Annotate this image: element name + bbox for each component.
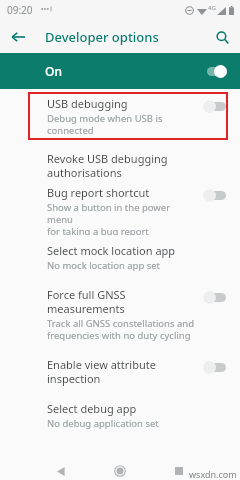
button[interactable]: Enable view attribute inspection xyxy=(0,349,240,393)
button[interactable]: Select debug app xyxy=(0,393,240,433)
staticText: Select debug app xyxy=(47,401,137,416)
button[interactable]: Recents xyxy=(170,462,188,480)
staticText: On xyxy=(45,63,62,79)
staticText: Bug report shortcut xyxy=(47,185,150,200)
button[interactable]: On xyxy=(0,53,240,89)
button[interactable]: Back xyxy=(6,25,30,49)
button[interactable]: USB debugging xyxy=(0,89,240,141)
staticText: Select mock location app xyxy=(47,243,176,258)
staticText: No debug application set xyxy=(47,417,159,430)
staticText: 4G xyxy=(208,4,216,12)
staticText: wsxdn.com xyxy=(189,468,237,480)
staticText: Developer options xyxy=(45,28,159,46)
button[interactable]: Home xyxy=(111,462,129,480)
button[interactable]: Back xyxy=(52,462,70,480)
button[interactable]: Bug report shortcut xyxy=(0,179,240,235)
staticText: Revoke USB debugging authorisations xyxy=(47,151,229,179)
staticText: Show a button in the power menu for taki… xyxy=(47,201,197,235)
button[interactable]: Force full GNSS measurements xyxy=(0,279,240,349)
button[interactable]: Revoke USB debugging authorisations xyxy=(0,141,240,179)
staticText: USB debugging xyxy=(47,96,128,111)
staticText: Enable view attribute inspection xyxy=(47,357,156,386)
staticText: Track all GNSS constellations and freque… xyxy=(47,317,195,342)
staticText: No mock location app set xyxy=(47,259,161,272)
staticText: Debug mode when USB is connected xyxy=(47,112,163,137)
button[interactable]: Search xyxy=(210,25,234,49)
staticText: 09:20 xyxy=(7,3,33,17)
button[interactable]: Select mock location app xyxy=(0,235,240,279)
staticText: Force full GNSS measurements xyxy=(47,287,126,316)
